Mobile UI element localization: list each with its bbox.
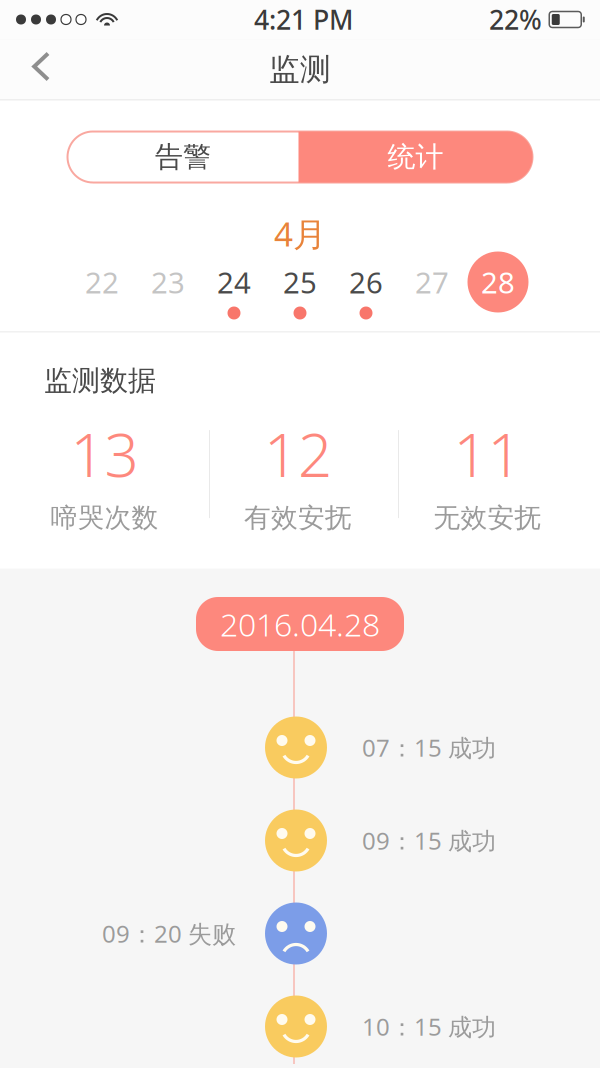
staticText: 28 <box>481 262 515 301</box>
button[interactable]: 07：15 成功 <box>0 701 600 794</box>
staticText: 监测 <box>269 51 331 88</box>
staticText: 27 <box>415 262 449 301</box>
staticText: 啼哭次数 <box>50 502 158 534</box>
staticText: 无效安抚 <box>433 502 541 534</box>
button[interactable]: 26 <box>333 251 399 325</box>
staticText: 22 <box>85 262 119 301</box>
button[interactable]: 23 <box>135 251 201 325</box>
button[interactable]: Back <box>0 39 70 99</box>
staticText: 09：15 成功 <box>362 825 496 856</box>
staticText: 监测数据 <box>44 363 156 398</box>
staticText: 23 <box>151 262 185 301</box>
staticText: 2016.04.28 <box>220 603 380 645</box>
button[interactable]: 10：15 成功 <box>0 980 600 1068</box>
staticText: 告警 <box>155 140 211 174</box>
staticText: 有效安抚 <box>244 502 352 534</box>
button[interactable]: 25 <box>267 251 333 325</box>
button[interactable]: 统计 <box>298 131 532 182</box>
button[interactable]: 27 <box>399 251 465 325</box>
staticText: 25 <box>283 262 317 301</box>
button[interactable]: 告警 <box>67 131 298 182</box>
button[interactable]: 28 <box>465 251 531 325</box>
button[interactable]: 22 <box>69 251 135 325</box>
staticText: 24 <box>217 262 251 301</box>
button[interactable]: 09：20 失败 <box>0 887 600 980</box>
staticText: 11 <box>453 414 521 494</box>
staticText: 4月 <box>274 211 326 256</box>
staticText: 统计 <box>387 140 443 174</box>
staticText: 4:21 PM <box>254 2 353 37</box>
button[interactable]: 09：15 成功 <box>0 794 600 887</box>
staticText: 09：20 失败 <box>102 918 236 949</box>
staticText: 22% <box>489 2 542 37</box>
staticText: 26 <box>349 262 383 301</box>
button[interactable]: 24 <box>201 251 267 325</box>
staticText: 07：15 成功 <box>362 732 496 763</box>
staticText: 13 <box>70 414 138 494</box>
staticText: 12 <box>264 414 332 494</box>
staticText: 10：15 成功 <box>362 1011 496 1042</box>
